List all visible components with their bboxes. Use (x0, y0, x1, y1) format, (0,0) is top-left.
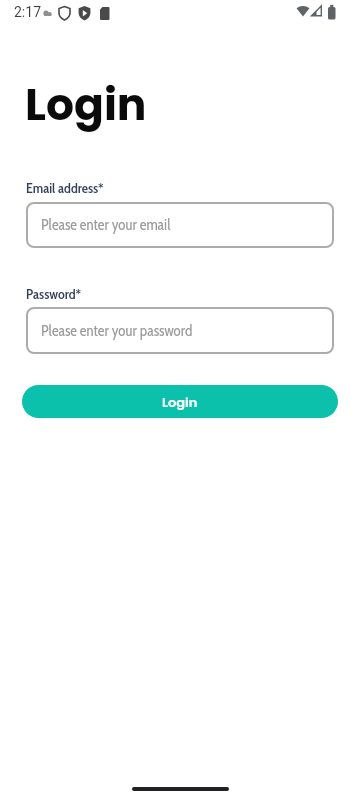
staticText: Login (162, 393, 198, 411)
staticText: 2:17 (14, 4, 41, 20)
staticText: Password* (26, 285, 82, 302)
button[interactable]: Login (22, 385, 338, 418)
staticText: Email address* (26, 179, 104, 196)
button[interactable]: Please enter your password (26, 307, 334, 354)
staticText: Please enter your password (41, 322, 193, 340)
staticText: Please enter your email (41, 216, 171, 234)
staticText: Login (25, 74, 147, 136)
button[interactable]: Please enter your email (26, 202, 334, 248)
